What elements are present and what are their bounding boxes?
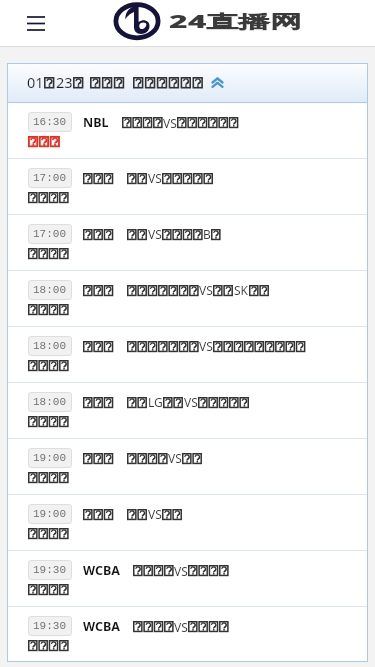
staticText: LG bbox=[148, 394, 163, 410]
staticText: 24直播网 bbox=[169, 9, 303, 34]
staticText: WCBA bbox=[83, 618, 120, 635]
button[interactable]: 18:00 bbox=[7, 327, 368, 382]
staticText: 17:00 bbox=[33, 228, 67, 240]
button[interactable]: 19:00 bbox=[7, 495, 368, 550]
staticText: 19:00 bbox=[33, 508, 67, 520]
staticText: 18:00 bbox=[33, 340, 67, 352]
staticText: 18:00 bbox=[33, 284, 67, 296]
staticText: NBL bbox=[83, 114, 109, 131]
staticText: 17:00 bbox=[33, 172, 67, 184]
staticText: 19:30 bbox=[33, 564, 67, 576]
button[interactable]: 17:00 bbox=[7, 215, 368, 270]
staticText: VS bbox=[174, 619, 188, 635]
staticText: 18:00 bbox=[33, 396, 67, 408]
button[interactable]: 24 Live Home bbox=[0, 0, 375, 45]
staticText: VS bbox=[163, 115, 177, 131]
button[interactable]: Menu bbox=[20, 7, 52, 39]
staticText: 23 bbox=[56, 72, 73, 92]
staticText: 16:30 bbox=[33, 116, 67, 128]
staticText: WCBA bbox=[83, 562, 120, 579]
staticText: 19:30 bbox=[33, 620, 67, 632]
staticText: VS bbox=[174, 563, 188, 579]
button[interactable]: 17:00 bbox=[7, 159, 368, 214]
button[interactable]: 19:00 bbox=[7, 439, 368, 494]
button[interactable]: 18:00 bbox=[7, 383, 368, 438]
button[interactable]: 18:00 bbox=[7, 271, 368, 326]
staticText: VS bbox=[184, 394, 198, 410]
button[interactable]: 01 bbox=[7, 63, 368, 102]
staticText: B bbox=[203, 226, 211, 242]
staticText: VS bbox=[148, 170, 162, 186]
staticText: VS bbox=[148, 506, 162, 522]
staticText: 19:00 bbox=[33, 452, 67, 464]
staticText: 01 bbox=[27, 72, 44, 92]
button[interactable]: 19:30 bbox=[7, 607, 368, 662]
button[interactable]: 19:30 bbox=[7, 551, 368, 606]
button[interactable]: 16:30 bbox=[7, 103, 368, 158]
staticText: VS bbox=[148, 226, 162, 242]
staticText: VS bbox=[199, 338, 213, 354]
staticText: VS bbox=[199, 282, 213, 298]
staticText: VS bbox=[168, 450, 182, 466]
staticText: SK bbox=[234, 282, 249, 298]
